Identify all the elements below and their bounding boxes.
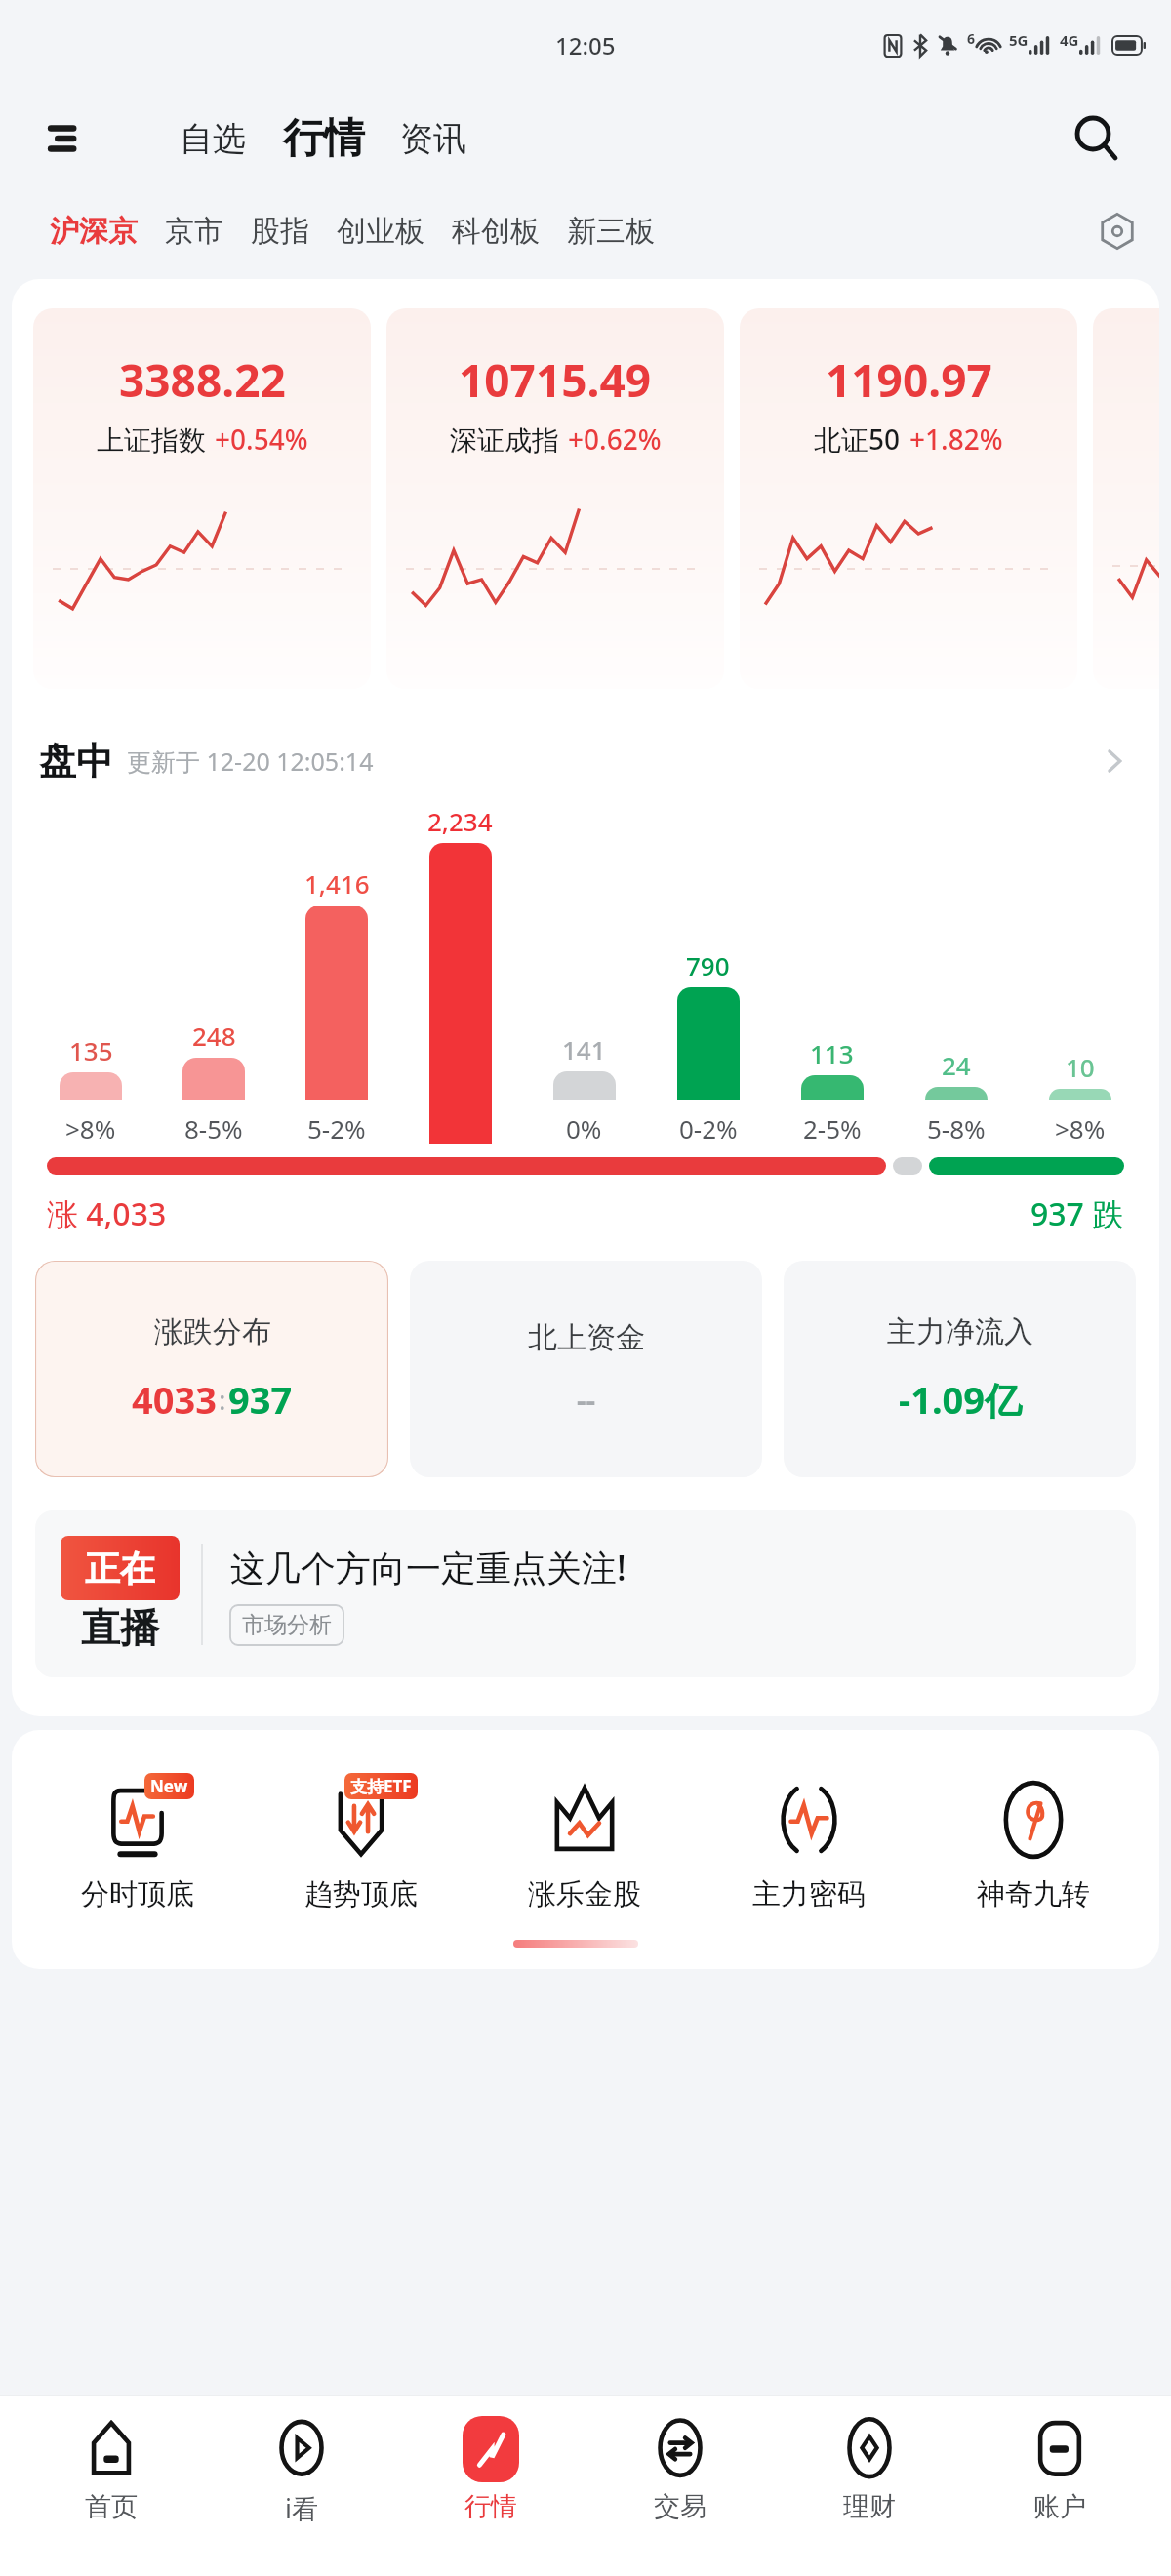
button[interactable]: 支持ETF: [249, 1771, 472, 1912]
button[interactable]: 股指: [248, 205, 312, 258]
staticText: >8%: [65, 1111, 116, 1146]
staticText: 12:05: [555, 29, 616, 61]
staticText: 涨乐金股: [528, 1876, 641, 1912]
staticText: 账户: [1033, 2490, 1086, 2523]
button[interactable]: 1190.97: [740, 308, 1077, 689]
staticText: 分时顶底: [81, 1876, 194, 1912]
button[interactable]: 北上资金: [410, 1261, 762, 1477]
staticText: 主力密码: [752, 1876, 866, 1912]
button[interactable]: 资讯: [394, 108, 472, 170]
button[interactable]: 主力密码: [697, 1771, 921, 1912]
staticText: 交易: [654, 2490, 707, 2523]
staticText: 京市: [165, 213, 223, 250]
staticText: 24: [942, 1048, 971, 1082]
staticText: 3388.22: [119, 349, 286, 411]
staticText: 这几个方向一定重点关注!: [230, 1544, 626, 1591]
staticText: +1.82%: [909, 421, 1003, 458]
button[interactable]: 涨跌分布: [35, 1261, 388, 1477]
staticText: 0-2%: [679, 1111, 738, 1146]
staticText: 股指: [251, 213, 309, 250]
staticText: 8-5%: [184, 1111, 243, 1146]
staticText: -1.09亿: [899, 1374, 1023, 1425]
button[interactable]: 理财: [791, 2416, 948, 2523]
button[interactable]: 正在: [35, 1510, 1136, 1677]
staticText: 5-2%: [307, 1111, 366, 1146]
other: More: [1097, 744, 1132, 779]
staticText: 790: [686, 948, 730, 983]
button[interactable]: Search: [1071, 114, 1120, 163]
staticText: 新三板: [567, 213, 655, 250]
staticText: 0%: [566, 1111, 602, 1146]
staticText: 涨 4,033: [47, 1192, 167, 1235]
staticText: 趋势顶底: [304, 1876, 418, 1912]
staticText: 6: [967, 29, 976, 48]
staticText: 135: [69, 1033, 113, 1067]
button[interactable]: 行情: [413, 2416, 569, 2523]
staticText: 上证指数: [97, 423, 206, 458]
staticText: 自选: [180, 118, 246, 160]
staticText: 4G: [1060, 30, 1079, 50]
staticText: --: [577, 1380, 596, 1420]
button[interactable]: New: [25, 1771, 249, 1912]
staticText: +0.62%: [568, 421, 662, 458]
staticText: 2-5%: [803, 1111, 862, 1146]
staticText: 5G: [1009, 30, 1029, 50]
button[interactable]: 京市: [162, 205, 226, 258]
staticText: 248: [192, 1019, 236, 1053]
staticText: 北上资金: [528, 1319, 645, 1356]
button[interactable]: 行情: [277, 103, 371, 175]
button[interactable]: 创业板: [334, 205, 427, 258]
button[interactable]: Menu: [49, 118, 90, 159]
staticText: 937: [228, 1374, 293, 1425]
staticText: 资讯: [400, 118, 466, 160]
staticText: 市场分析: [242, 1611, 332, 1639]
staticText: 涨跌分布: [154, 1313, 271, 1350]
button[interactable]: 涨乐金股: [472, 1771, 697, 1912]
button[interactable]: 沪深京: [47, 205, 141, 258]
staticText: 10: [1066, 1050, 1095, 1084]
staticText: 创业板: [337, 213, 424, 250]
button[interactable]: 新三板: [564, 205, 658, 258]
button[interactable]: 自选: [174, 108, 252, 170]
staticText: 理财: [843, 2490, 896, 2523]
staticText: 正在: [85, 1547, 155, 1590]
staticText: New: [150, 1775, 188, 1797]
button[interactable]: 科创板: [449, 205, 543, 258]
staticText: 1190.97: [826, 349, 992, 411]
staticText: 支持ETF: [350, 1775, 412, 1797]
staticText: :: [219, 1381, 226, 1418]
staticText: 2,234: [427, 804, 493, 838]
staticText: 5-8%: [927, 1111, 986, 1146]
staticText: 141: [562, 1032, 606, 1067]
button[interactable]: Edit categories: [1091, 205, 1144, 258]
staticText: >8%: [1055, 1111, 1106, 1146]
button[interactable]: 账户: [982, 2416, 1138, 2523]
staticText: 北证50: [814, 421, 901, 458]
staticText: 科创板: [452, 213, 540, 250]
staticText: 937 跌: [1030, 1192, 1124, 1235]
staticText: 深证成指: [450, 423, 559, 458]
button[interactable]: i看: [223, 2416, 380, 2526]
button[interactable]: 3388.22: [33, 308, 371, 689]
staticText: 113: [810, 1036, 854, 1070]
staticText: 1,416: [304, 866, 370, 901]
staticText: i看: [285, 2490, 318, 2526]
button[interactable]: 盘中: [12, 734, 1159, 788]
staticText: 更新于 12-20 12:05:14: [127, 745, 374, 778]
staticText: 首页: [85, 2490, 138, 2523]
button[interactable]: 交易: [602, 2416, 758, 2523]
button[interactable]: 首页: [33, 2416, 189, 2523]
staticText: 10715.49: [459, 349, 652, 411]
staticText: +0.54%: [215, 421, 308, 458]
staticText: 行情: [283, 113, 365, 165]
staticText: 主力净流入: [887, 1313, 1033, 1350]
staticText: 4033: [132, 1374, 217, 1425]
staticText: 沪深京: [50, 213, 138, 250]
button[interactable]: 10715.49: [386, 308, 724, 689]
button[interactable]: 2: [1093, 308, 1159, 689]
staticText: 神奇九转: [977, 1876, 1090, 1912]
button[interactable]: 主力净流入: [784, 1261, 1136, 1477]
button[interactable]: 神奇九转: [921, 1771, 1146, 1912]
staticText: 直播: [81, 1603, 159, 1652]
staticText: 行情: [464, 2490, 517, 2523]
